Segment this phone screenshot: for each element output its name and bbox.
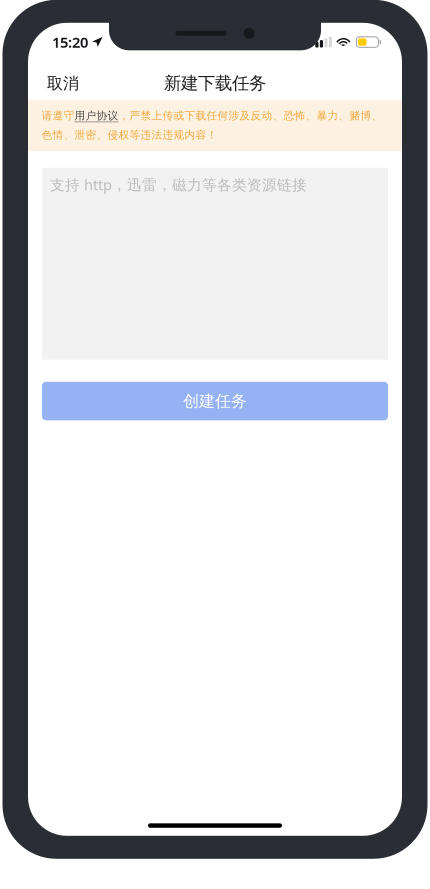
staticText: 新建下载任务 [164, 73, 266, 94]
button[interactable]: 创建任务 [42, 382, 388, 420]
staticText: 请遵守 [41, 109, 74, 122]
staticText: 色情、泄密、侵权等违法违规内容！ [41, 128, 217, 141]
button[interactable]: 用户协议 [74, 109, 118, 122]
staticText: 用户协议 [74, 109, 118, 122]
staticText: 取消 [47, 73, 79, 93]
staticText: 支持 http，迅雷，磁力等各类资源链接 [50, 175, 307, 194]
staticText: 15:20 [52, 32, 88, 52]
staticText: 创建任务 [183, 391, 247, 411]
staticText: ，严禁上传或下载任何涉及反动、恐怖、暴力、赌博、 [118, 109, 382, 122]
button[interactable]: 取消 [45, 67, 81, 99]
